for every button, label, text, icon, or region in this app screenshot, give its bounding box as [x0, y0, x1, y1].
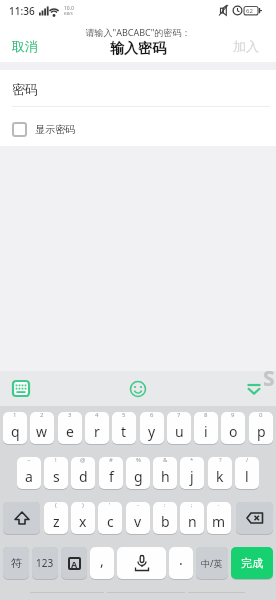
staticText: 10.0 [64, 5, 74, 12]
staticText: w [36, 422, 48, 441]
staticText: 1 [13, 411, 17, 419]
button[interactable]: # [99, 457, 123, 489]
staticText: @ [80, 456, 86, 464]
button[interactable]: 8 [194, 412, 218, 444]
staticText: % [136, 456, 141, 464]
button[interactable]: ' [98, 502, 122, 534]
staticText: ~ [27, 456, 31, 464]
staticText: ? [219, 456, 222, 464]
button[interactable]: ; [180, 502, 204, 534]
staticText: m [212, 512, 226, 531]
button[interactable] [3, 502, 40, 534]
staticText: z [53, 512, 60, 531]
staticText: a [25, 467, 33, 486]
button[interactable]: 123 [32, 547, 58, 579]
button[interactable]: 6 [140, 412, 164, 444]
staticText: 4 [95, 411, 99, 419]
staticText: s [53, 467, 60, 486]
staticText: l [245, 467, 249, 486]
staticText: n [188, 512, 197, 531]
staticText: 3 [68, 411, 72, 419]
staticText: : [164, 501, 166, 509]
staticText: - [137, 501, 139, 509]
staticText: k [216, 467, 224, 486]
staticText: c [107, 512, 114, 531]
button[interactable]: 7 [167, 412, 191, 444]
staticText: ( [55, 501, 57, 509]
staticText: u [175, 422, 184, 441]
button[interactable] [242, 378, 266, 400]
staticText: o [229, 422, 238, 441]
button[interactable]: 取消 [0, 34, 70, 60]
button[interactable] [236, 502, 273, 534]
staticText: 完成 [241, 556, 263, 570]
staticText: 请输入"ABCABC"的密码： [0, 26, 276, 38]
staticText: 123 [36, 556, 54, 570]
staticText: 加入 [233, 38, 259, 54]
button[interactable]: 符 [3, 547, 29, 579]
staticText: 密码 [12, 81, 38, 97]
staticText: d [79, 467, 88, 486]
staticText: 11:36 [9, 4, 35, 18]
button[interactable]: · [207, 502, 231, 534]
staticText: t [121, 422, 127, 441]
button[interactable]: 9 [221, 412, 245, 444]
staticText: j [190, 467, 194, 486]
button[interactable]: : [153, 502, 177, 534]
staticText: h [161, 467, 170, 486]
staticText: ! [55, 456, 57, 464]
button[interactable]: 加入 [220, 34, 276, 60]
staticText: . [179, 550, 183, 569]
button[interactable]: - [126, 502, 150, 534]
staticText: # [109, 456, 113, 464]
button[interactable]: * [180, 457, 204, 489]
staticText: · [218, 501, 220, 509]
staticText: S [263, 364, 275, 393]
button[interactable]: . [169, 547, 193, 579]
staticText: 9 [231, 411, 235, 419]
button[interactable]: 中/英 [196, 547, 228, 579]
button[interactable]: 5 [112, 412, 136, 444]
staticText: 显示密码 [35, 123, 75, 136]
staticText: y [148, 422, 156, 441]
staticText: 7 [177, 411, 181, 419]
staticText: 6 [150, 411, 154, 419]
button[interactable]: 4 [85, 412, 109, 444]
button[interactable]: / [235, 457, 259, 489]
button[interactable]: ( [44, 502, 68, 534]
button[interactable] [117, 547, 166, 579]
staticText: 取消 [12, 38, 38, 54]
staticText: x [79, 512, 87, 531]
button[interactable]: 显示密码 [12, 120, 132, 138]
staticText: r [94, 422, 100, 441]
staticText: 输入密码 [0, 40, 276, 58]
button[interactable]: 2 [30, 412, 54, 444]
button[interactable]: , [90, 547, 114, 579]
button[interactable]: ~ [17, 457, 41, 489]
button[interactable]: 0 [249, 412, 273, 444]
staticText: v [134, 512, 142, 531]
staticText: 5 [122, 411, 126, 419]
staticText: & [163, 456, 168, 464]
button[interactable] [125, 376, 151, 402]
button[interactable]: A [61, 547, 87, 579]
button[interactable]: ? [208, 457, 232, 489]
button[interactable]: ! [44, 457, 68, 489]
staticText: 符 [11, 556, 22, 570]
staticText: A [71, 558, 78, 570]
staticText: ) [82, 501, 84, 509]
button[interactable]: % [126, 457, 150, 489]
button[interactable]: @ [71, 457, 95, 489]
staticText: g [134, 467, 143, 486]
button[interactable]: ) [71, 502, 95, 534]
staticText: ; [191, 501, 193, 509]
button[interactable]: 1 [3, 412, 27, 444]
button[interactable]: 3 [58, 412, 82, 444]
staticText: / [246, 456, 249, 464]
staticText: 中/英 [201, 557, 223, 569]
staticText: i [204, 422, 208, 441]
button[interactable]: 完成 [231, 547, 273, 579]
button[interactable] [6, 375, 36, 402]
button[interactable]: & [153, 457, 177, 489]
staticText: q [11, 422, 20, 441]
